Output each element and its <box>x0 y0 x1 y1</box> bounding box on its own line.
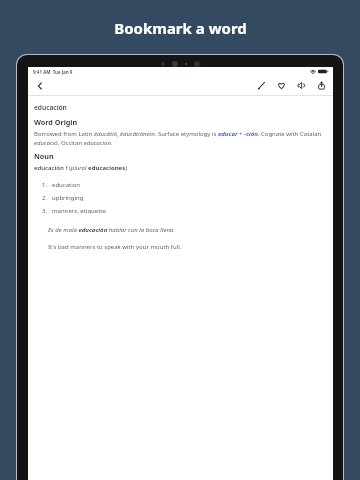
staticText: educación f (plural educaciones) <box>34 164 128 172</box>
staticText: It's bad manners to speak with your mout… <box>48 243 182 251</box>
staticText: upbringing <box>52 194 84 202</box>
staticText: education <box>52 181 81 189</box>
button[interactable]: 2. <box>34 194 324 202</box>
staticText: Es de mala educación hablar con la boca … <box>48 226 175 234</box>
button[interactable]: 3. <box>34 207 324 215</box>
staticText: Bookmark a word <box>114 18 247 38</box>
staticText: Word Origin <box>34 117 78 127</box>
button[interactable]: Share <box>315 79 328 92</box>
staticText: manners, etiquette <box>52 207 106 215</box>
button[interactable]: Favourite <box>275 79 288 92</box>
staticText: Borrowed from Latin ēducātiō, ēducātiōne… <box>34 130 324 147</box>
staticText: educación <box>34 103 67 112</box>
staticText: 3. <box>42 207 48 215</box>
button[interactable]: Edit <box>255 79 268 92</box>
staticText: 9:41 AM Tue Jan 9 <box>33 69 73 75</box>
staticText: 1. <box>42 181 48 189</box>
button[interactable]: Back <box>32 78 48 94</box>
button[interactable]: 1. <box>34 181 324 189</box>
staticText: 2. <box>42 194 48 202</box>
staticText: Noun <box>34 151 54 161</box>
button[interactable]: Pronounce <box>295 79 308 92</box>
